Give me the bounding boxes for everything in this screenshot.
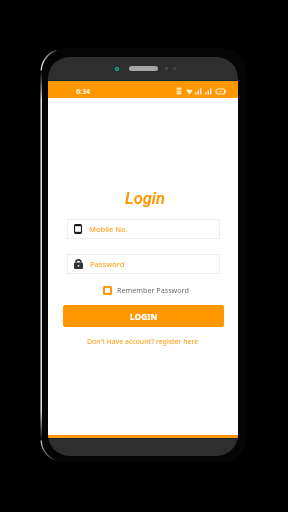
staticText: Login (125, 189, 165, 208)
staticText: Mobile No. (89, 224, 128, 234)
button[interactable]: Remember Password (102, 284, 190, 296)
staticText: LOGIN (130, 311, 158, 322)
button[interactable]: Mobile No. (67, 219, 220, 239)
staticText: Password (90, 259, 125, 269)
staticText: Remember Password (117, 285, 189, 295)
button[interactable]: Password (67, 254, 220, 274)
button[interactable]: Don't Have account? register here (87, 337, 199, 347)
staticText: 6:34 (76, 87, 90, 97)
staticText: Don't Have account? register here (87, 337, 199, 347)
button[interactable]: LOGIN (63, 305, 224, 327)
